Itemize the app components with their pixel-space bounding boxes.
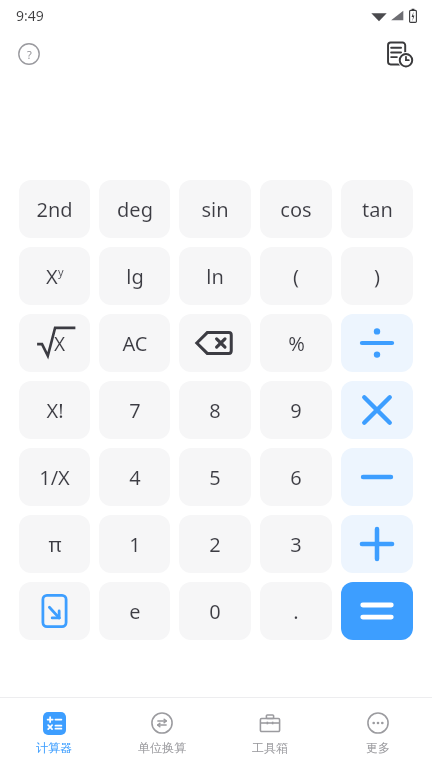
staticText: %	[288, 330, 305, 357]
staticText: X	[54, 331, 66, 357]
button[interactable]: X!	[19, 381, 90, 439]
button[interactable]: 7	[99, 381, 170, 439]
button[interactable]: e	[99, 582, 170, 640]
button[interactable]: tan	[341, 180, 413, 238]
staticText: y	[58, 264, 64, 279]
staticText: 1	[129, 531, 141, 558]
button[interactable]: AC	[99, 314, 170, 372]
button[interactable]: 4	[99, 448, 170, 506]
staticText: 5	[209, 464, 221, 491]
staticText: X!	[46, 397, 64, 424]
staticText: ?	[27, 47, 32, 62]
button[interactable]: 0	[179, 582, 251, 640]
staticText: π	[48, 531, 62, 558]
staticText: 计算器	[36, 740, 72, 755]
button[interactable]: cos	[260, 180, 332, 238]
button[interactable]: 9	[260, 381, 332, 439]
staticText: X	[46, 263, 58, 290]
button[interactable]: 2nd	[19, 180, 90, 238]
staticText: 更多	[366, 740, 390, 755]
button[interactable]: 工具箱	[216, 698, 324, 767]
button[interactable]: History	[380, 34, 420, 74]
button[interactable]: Multiply	[341, 381, 413, 439]
staticText: sin	[201, 196, 229, 223]
button[interactable]: Square root	[19, 314, 90, 372]
button[interactable]: 1	[99, 515, 170, 573]
staticText: (	[293, 263, 299, 290]
staticText: lg	[126, 263, 144, 290]
staticText: 9	[290, 397, 302, 424]
button[interactable]: 3	[260, 515, 332, 573]
button[interactable]: Minus	[341, 448, 413, 506]
staticText: 6	[290, 464, 302, 491]
button[interactable]: lg	[99, 247, 170, 305]
button[interactable]: 5	[179, 448, 251, 506]
button[interactable]: Backspace	[179, 314, 251, 372]
staticText: 9:49	[16, 6, 44, 25]
button[interactable]: 1/X	[19, 448, 90, 506]
button[interactable]: deg	[99, 180, 170, 238]
staticText: 2nd	[36, 196, 73, 223]
button[interactable]: π	[19, 515, 90, 573]
staticText: 8	[209, 397, 221, 424]
button[interactable]: 更多	[324, 698, 432, 767]
button[interactable]: %	[260, 314, 332, 372]
button[interactable]: )	[341, 247, 413, 305]
button[interactable]: 6	[260, 448, 332, 506]
staticText: 3	[290, 531, 302, 558]
staticText: )	[374, 263, 380, 290]
button[interactable]: Expand keypad	[19, 582, 90, 640]
button[interactable]: X	[19, 247, 90, 305]
button[interactable]: 单位换算	[108, 698, 216, 767]
button[interactable]: sin	[179, 180, 251, 238]
staticText: cos	[280, 196, 312, 223]
staticText: 7	[129, 397, 141, 424]
staticText: 1/X	[39, 464, 70, 491]
button[interactable]: 计算器	[0, 698, 108, 767]
staticText: 单位换算	[138, 740, 186, 755]
button[interactable]: (	[260, 247, 332, 305]
staticText: e	[129, 598, 141, 625]
button[interactable]: Help	[12, 37, 46, 71]
staticText: AC	[122, 330, 148, 357]
button[interactable]: Divide	[341, 314, 413, 372]
button[interactable]: Plus	[341, 515, 413, 573]
button[interactable]: Equals	[341, 582, 413, 640]
button[interactable]: ln	[179, 247, 251, 305]
button[interactable]: 8	[179, 381, 251, 439]
staticText: .	[293, 598, 299, 625]
staticText: 2	[209, 531, 221, 558]
staticText: deg	[117, 196, 153, 223]
button[interactable]: .	[260, 582, 332, 640]
staticText: tan	[362, 196, 393, 223]
staticText: ln	[206, 263, 224, 290]
staticText: 4	[129, 464, 141, 491]
staticText: 工具箱	[252, 740, 288, 755]
staticText: 0	[209, 598, 221, 625]
button[interactable]: 2	[179, 515, 251, 573]
